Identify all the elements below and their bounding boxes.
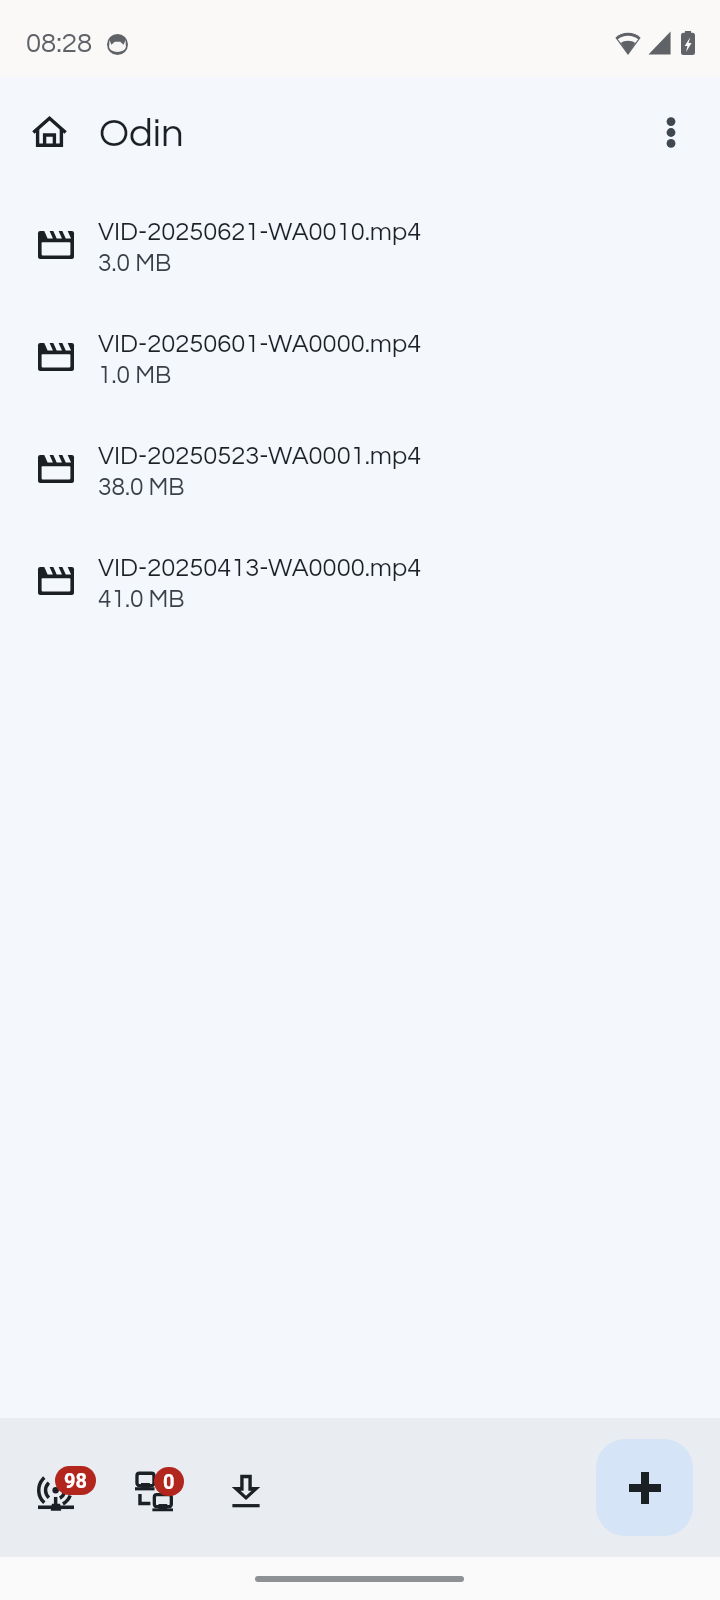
button[interactable]: VID-20250601-WA0000.mp4: [0, 301, 720, 413]
button[interactable]: VID-20250413-WA0000.mp4: [0, 525, 720, 637]
staticText: Odin: [99, 113, 184, 154]
staticText: 3.0 MB: [98, 251, 172, 276]
staticText: 41.0 MB: [98, 587, 185, 612]
button[interactable]: Broadcast, 98 notifications: [26, 1456, 102, 1518]
staticText: VID-20250523-WA0001.mp4: [98, 443, 422, 469]
staticText: VID-20250621-WA0010.mp4: [98, 219, 422, 245]
button[interactable]: Devices, 0 notifications: [124, 1456, 200, 1518]
button[interactable]: More options: [641, 102, 701, 162]
button[interactable]: VID-20250621-WA0010.mp4: [0, 189, 720, 301]
staticText: 38.0 MB: [98, 475, 185, 500]
staticText: VID-20250601-WA0000.mp4: [98, 331, 422, 357]
button[interactable]: Downloads: [212, 1456, 280, 1524]
staticText: 1.0 MB: [98, 363, 172, 388]
staticText: 0: [163, 1470, 175, 1493]
staticText: 08:28: [26, 29, 93, 57]
button[interactable]: Add: [596, 1439, 693, 1536]
staticText: VID-20250413-WA0000.mp4: [98, 555, 422, 581]
button[interactable]: VID-20250523-WA0001.mp4: [0, 413, 720, 525]
staticText: 98: [64, 1469, 87, 1492]
button[interactable]: Home: [16, 99, 82, 165]
